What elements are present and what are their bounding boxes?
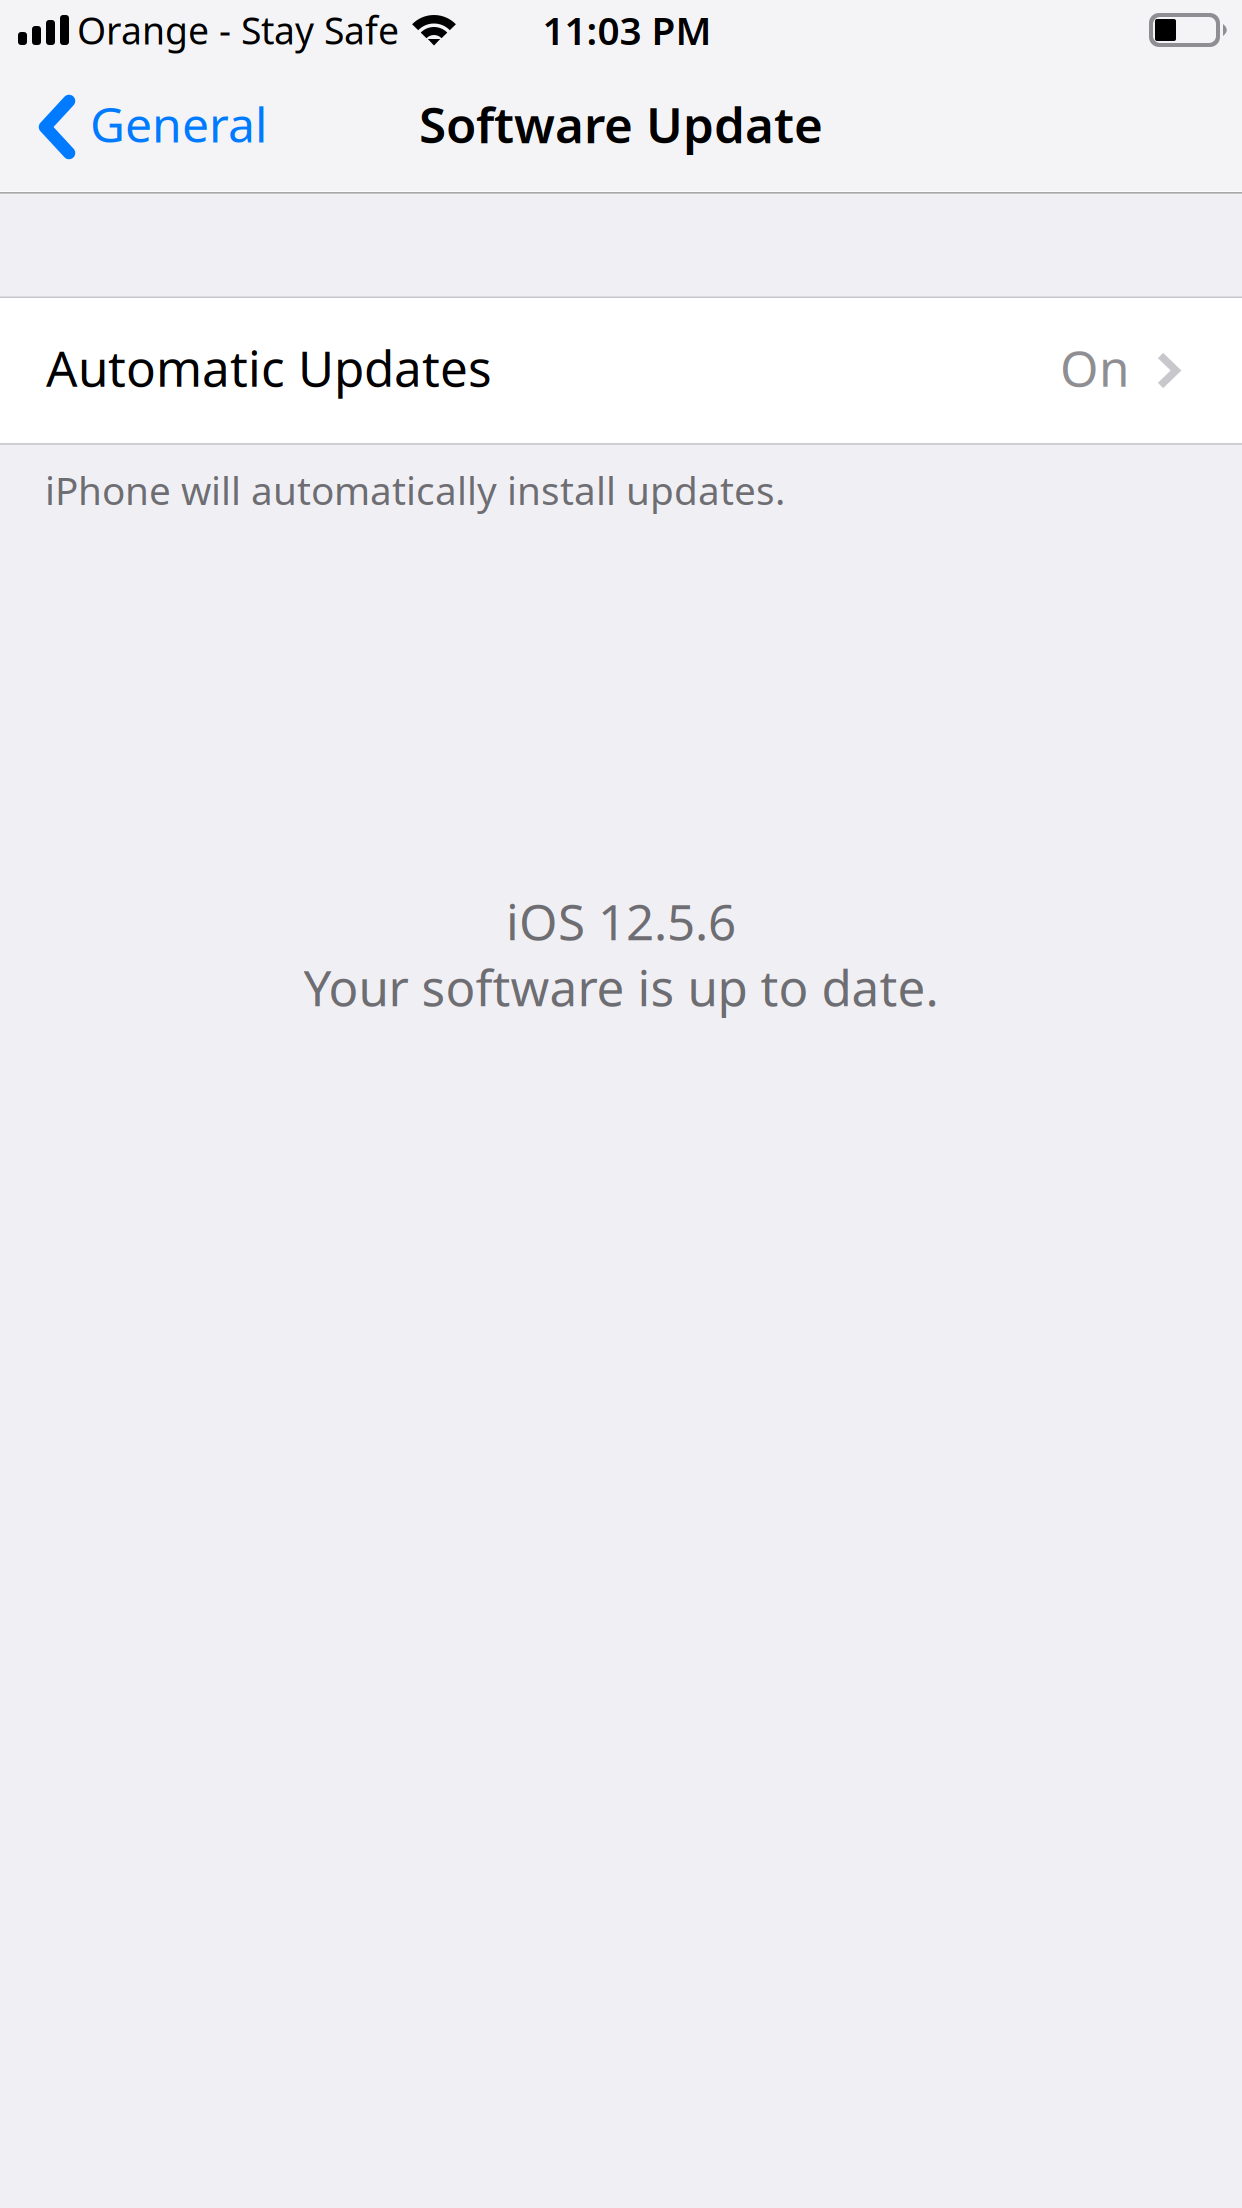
- staticText: On: [1060, 335, 1129, 400]
- staticText: General: [90, 92, 267, 156]
- staticText: Your software is up to date.: [303, 954, 938, 1020]
- button[interactable]: General: [0, 62, 300, 188]
- staticText: Automatic Updates: [46, 335, 492, 400]
- staticText: iPhone will automatically install update…: [45, 464, 785, 516]
- staticText: Orange - Stay Safe: [77, 5, 399, 55]
- staticText: 11:03 PM: [542, 4, 711, 56]
- button[interactable]: Automatic Updates: [0, 298, 1242, 443]
- staticText: Software Update: [419, 91, 823, 157]
- staticText: iOS 12.5.6: [506, 888, 736, 954]
